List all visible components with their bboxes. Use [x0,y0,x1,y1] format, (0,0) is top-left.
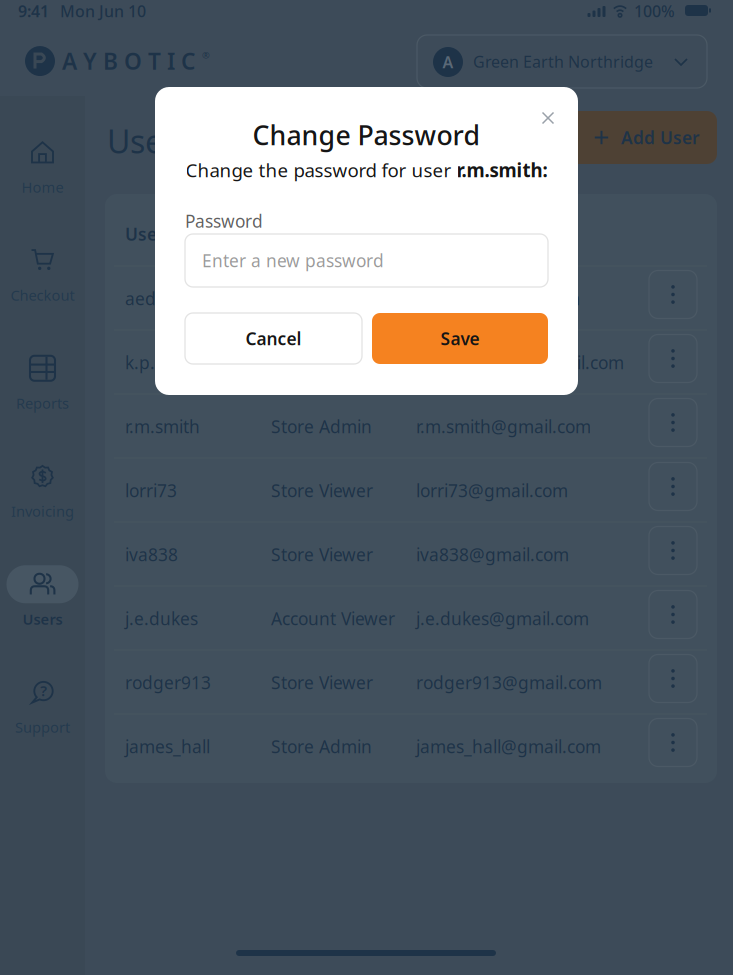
staticText: Users [22,609,62,629]
staticText: A Y B O T I C [62,46,195,76]
button[interactable]: Paybotic [25,46,210,76]
staticText: Account Viewer [271,607,395,630]
staticText: Enter a new password [202,249,384,272]
staticText: Save [440,327,479,350]
staticText: r.m.smith [125,415,200,438]
staticText: Checkout [10,285,74,305]
staticText: Role [271,222,308,245]
staticText: Store Viewer [271,479,373,502]
staticText: Reports [16,393,69,413]
staticText: james_hall@gmail.com [416,735,601,758]
staticText: Users [107,120,191,162]
staticText: 100% [634,0,675,22]
staticText: 9:41 [18,0,49,22]
button[interactable]: Reports [0,346,85,416]
staticText: Store Admin [271,351,372,374]
staticText: r.m.smith@gmail.com [416,415,591,438]
staticText: Store Viewer [271,287,373,310]
staticText: rodger913 [125,671,211,694]
button[interactable]: More options for lorri73 [649,462,697,510]
staticText: Home [21,177,63,197]
staticText: A [442,51,453,73]
staticText: Invoicing [11,501,74,521]
button[interactable]: More options for james_hall [649,718,697,766]
button[interactable]: A [417,35,707,88]
staticText: Username [125,222,213,245]
button[interactable]: Add User [417,111,717,164]
staticText: k.p.anderson [125,351,233,374]
button[interactable]: Invoicing [0,454,85,524]
staticText: Password [185,209,263,232]
staticText: aedison [125,287,189,310]
staticText: Store Admin [271,735,372,758]
staticText: Support [15,717,70,737]
staticText: Email [416,222,463,245]
staticText: j.e.dukes [125,607,198,630]
staticText: lorri73 [125,479,177,502]
button[interactable]: More options for k.p.anderson [649,334,697,382]
staticText: Store Admin [271,415,372,438]
staticText: iva838@gmail.com [416,543,569,566]
staticText: lorri73@gmail.com [416,479,568,502]
staticText: Store Viewer [271,671,373,694]
staticText: aedison@gmail.com [416,287,580,310]
button[interactable]: More options for r.m.smith [649,398,697,446]
button[interactable]: Checkout [0,238,85,308]
button[interactable]: More options for aedison [649,270,697,318]
button[interactable]: More options for rodger913 [649,654,697,702]
staticText: j.e.dukes@gmail.com [416,607,589,630]
staticText: ? [40,681,47,700]
button[interactable]: Cancel [185,313,362,364]
button[interactable]: Home [0,130,85,200]
staticText: rodger913@gmail.com [416,671,602,694]
staticText: Change Password [252,117,480,153]
staticText: Add User [621,126,700,149]
staticText: Change the password for user r.m.smith: [185,158,547,182]
button[interactable]: More options for iva838 [649,526,697,574]
button[interactable]: Close [532,102,564,134]
staticText: james_hall [125,735,210,758]
button[interactable]: Users [0,562,85,632]
staticText: Store Viewer [271,543,373,566]
staticText: k.p.anderson@gmail.com [416,351,624,374]
staticText: Cancel [245,327,301,350]
staticText: Green Earth Northridge [473,51,653,72]
button[interactable]: ? [0,670,85,740]
staticText: Mon Jun 10 [60,0,146,22]
button[interactable]: Save [372,313,548,364]
staticText: iva838 [125,543,178,566]
button[interactable]: More options for j.e.dukes [649,590,697,638]
staticText: ® [202,49,210,61]
